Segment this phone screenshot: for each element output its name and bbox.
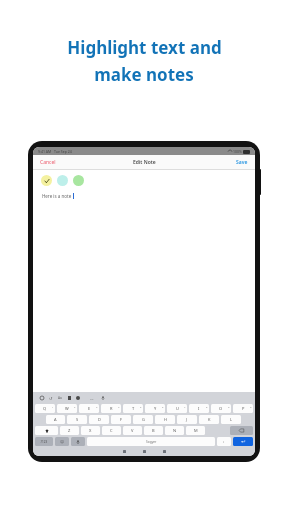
button[interactable]: K xyxy=(199,415,219,424)
button[interactable]: Y xyxy=(145,404,165,413)
staticText: .?123 xyxy=(40,440,48,444)
staticText: T xyxy=(132,406,135,411)
button[interactable]: X xyxy=(81,426,100,435)
button[interactable]: Yellow highlight selected xyxy=(41,175,52,186)
staticText: R xyxy=(110,406,113,411)
button[interactable]: Cancel xyxy=(33,156,63,169)
staticText: Highlight text and xyxy=(67,36,222,59)
staticText: X xyxy=(89,428,92,433)
staticText: K xyxy=(208,417,211,422)
staticText: Edit Note xyxy=(133,159,156,166)
button[interactable]: C xyxy=(102,426,121,435)
button[interactable]: Format tool 2 xyxy=(48,395,54,401)
button[interactable]: Dictate xyxy=(100,395,106,401)
button[interactable]: I xyxy=(189,404,209,413)
button[interactable]: H xyxy=(155,415,175,424)
staticText: M xyxy=(194,428,198,433)
staticText: L xyxy=(230,417,233,422)
staticText: make notes xyxy=(94,63,194,86)
staticText: E xyxy=(88,406,91,411)
staticText: 0 xyxy=(250,405,252,408)
staticText: Q xyxy=(43,406,47,411)
button[interactable]: Format tool 3 xyxy=(57,395,63,401)
button[interactable]: Key xyxy=(87,437,215,446)
staticText: 9 xyxy=(228,405,230,408)
staticText: A xyxy=(54,417,57,422)
button[interactable]: T xyxy=(123,404,143,413)
staticText: Cancel xyxy=(40,159,56,166)
button[interactable]: L xyxy=(221,415,241,424)
button[interactable]: E xyxy=(79,404,99,413)
button[interactable]: Format tool 4 xyxy=(66,395,72,401)
staticText: 3 xyxy=(96,405,98,408)
staticText: S xyxy=(76,417,79,422)
button[interactable]: V xyxy=(123,426,142,435)
staticText: W xyxy=(65,406,69,411)
staticText: 4 xyxy=(118,405,120,408)
button[interactable]: N xyxy=(165,426,184,435)
staticText: I xyxy=(198,406,200,411)
staticText: Here is a note xyxy=(42,193,72,199)
button[interactable]: W xyxy=(57,404,77,413)
button[interactable]: A xyxy=(46,415,65,424)
staticText: ↺ xyxy=(49,396,53,401)
button[interactable]: G xyxy=(133,415,153,424)
staticText: ☺ xyxy=(60,439,65,444)
staticText: U xyxy=(176,406,179,411)
button[interactable]: Save xyxy=(229,156,255,169)
button[interactable]: B xyxy=(144,426,163,435)
staticText: G xyxy=(142,417,145,422)
button[interactable]: Format tool 1 xyxy=(39,395,45,401)
button[interactable]: P xyxy=(233,404,253,413)
button[interactable]: Cyan highlight xyxy=(57,175,68,186)
staticText: 8 xyxy=(206,405,208,408)
staticText: 100% xyxy=(233,149,242,154)
button[interactable]: Key xyxy=(55,437,69,446)
staticText: Y xyxy=(154,406,157,411)
button[interactable]: U xyxy=(167,404,187,413)
staticText: F xyxy=(120,417,123,422)
staticText: N xyxy=(173,428,177,433)
staticText: J xyxy=(186,417,188,422)
button[interactable]: Green highlight xyxy=(73,175,84,186)
staticText: ‹ xyxy=(223,439,225,444)
staticText: H xyxy=(164,417,167,422)
staticText: Z xyxy=(68,428,71,433)
button[interactable]: Key xyxy=(71,437,85,446)
staticText: –– xyxy=(90,396,94,401)
staticText: 6 xyxy=(162,405,164,408)
button[interactable]: F xyxy=(111,415,131,424)
button[interactable]: O xyxy=(211,404,231,413)
staticText: B xyxy=(152,428,155,433)
button[interactable]: R xyxy=(101,404,121,413)
button[interactable]: Q xyxy=(35,404,55,413)
staticText: 7 xyxy=(184,405,186,408)
button[interactable]: Key xyxy=(35,426,58,435)
staticText: P xyxy=(242,406,245,411)
button[interactable]: Key xyxy=(233,437,253,446)
staticText: D xyxy=(98,417,101,422)
button[interactable]: Key xyxy=(230,426,253,435)
staticText: V xyxy=(131,428,134,433)
staticText: O xyxy=(219,406,223,411)
staticText: 1 xyxy=(52,405,54,408)
button[interactable]: S xyxy=(67,415,87,424)
staticText: Save xyxy=(236,159,248,166)
staticText: 9:41 AM Tue Sep 24 xyxy=(38,149,72,154)
button[interactable]: Format tool 5 xyxy=(75,395,81,401)
button[interactable]: Z xyxy=(60,426,79,435)
button[interactable]: Key xyxy=(217,437,231,446)
staticText: Aa xyxy=(58,396,62,400)
button[interactable]: J xyxy=(177,415,197,424)
staticText: 5 xyxy=(140,405,142,408)
staticText: Sogyer xyxy=(146,440,157,444)
staticText: 2 xyxy=(74,405,76,408)
staticText: C xyxy=(110,428,113,433)
button[interactable]: D xyxy=(89,415,109,424)
button[interactable]: M xyxy=(186,426,205,435)
button[interactable]: Key xyxy=(35,437,53,446)
